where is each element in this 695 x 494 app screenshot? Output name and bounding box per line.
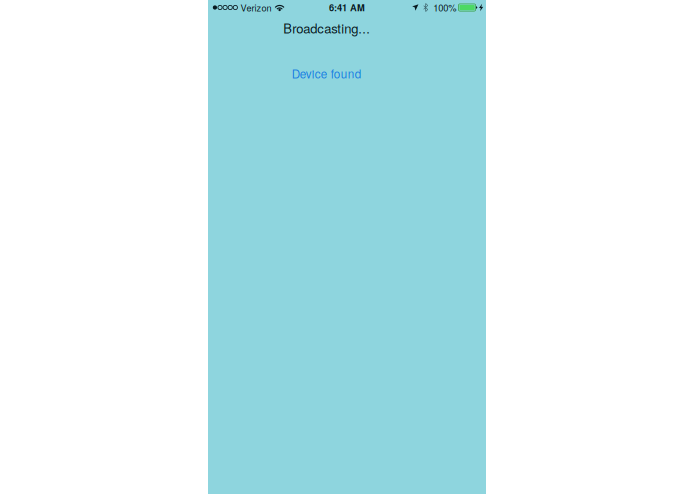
staticText: Broadcasting... — [283, 18, 370, 37]
staticText: Verizon — [240, 1, 271, 14]
staticText: 100% — [433, 1, 456, 14]
staticText: 6:41 AM — [329, 1, 365, 14]
staticText: Device found — [292, 65, 362, 82]
button[interactable]: Device found — [274, 55, 380, 92]
